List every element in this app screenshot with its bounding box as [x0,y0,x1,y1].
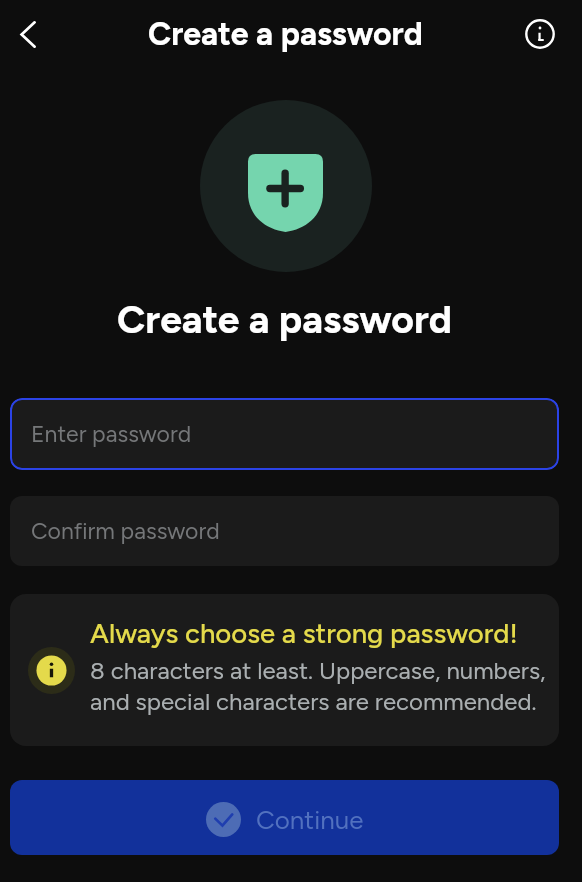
button[interactable]: Information [515,9,565,59]
staticText: Confirm password [31,517,220,545]
button[interactable]: Continue [10,780,559,855]
staticText: Enter password [31,420,192,448]
button[interactable]: Enter password [10,398,559,470]
staticText: 8 characters at least. Uppercase, number… [90,656,552,716]
staticText: Always choose a strong password! [90,617,518,650]
button[interactable]: Back [1,7,55,61]
staticText: Continue [256,804,364,835]
button[interactable]: Confirm password [10,496,559,566]
staticText: Create a password [148,15,423,53]
staticText: Create a password [10,296,559,343]
